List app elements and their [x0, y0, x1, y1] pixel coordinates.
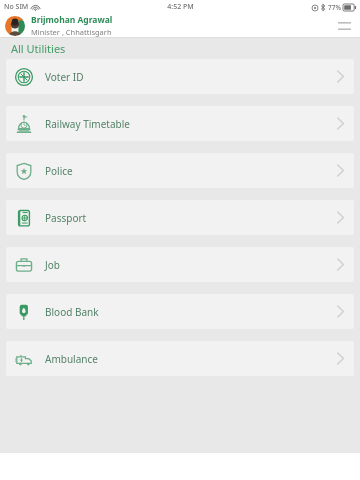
button[interactable]: Menu [333, 15, 355, 37]
staticText: Police [45, 164, 73, 178]
staticText: Passport [45, 211, 87, 225]
button[interactable]: Blood Bank [6, 294, 354, 329]
staticText: Brijmohan Agrawal [31, 14, 113, 26]
staticText: Job [45, 258, 60, 272]
staticText: No SIM [4, 2, 29, 12]
button[interactable]: Passport [6, 200, 354, 235]
staticText: Railway Timetable [45, 117, 130, 131]
staticText: Blood Bank [45, 305, 99, 319]
button[interactable]: Job [6, 247, 354, 282]
staticText: All Utilities [11, 41, 66, 56]
button[interactable]: Police [6, 153, 354, 188]
staticText: Voter ID [45, 70, 84, 84]
button[interactable]: Voter ID [6, 59, 354, 94]
button[interactable]: Railway Timetable [6, 106, 354, 141]
button[interactable]: Ambulance [6, 341, 354, 376]
staticText: 77% [328, 3, 341, 12]
staticText: Ambulance [45, 352, 98, 366]
staticText: Minister , Chhattisgarh [31, 27, 112, 37]
staticText: 4:52 PM [167, 2, 194, 12]
